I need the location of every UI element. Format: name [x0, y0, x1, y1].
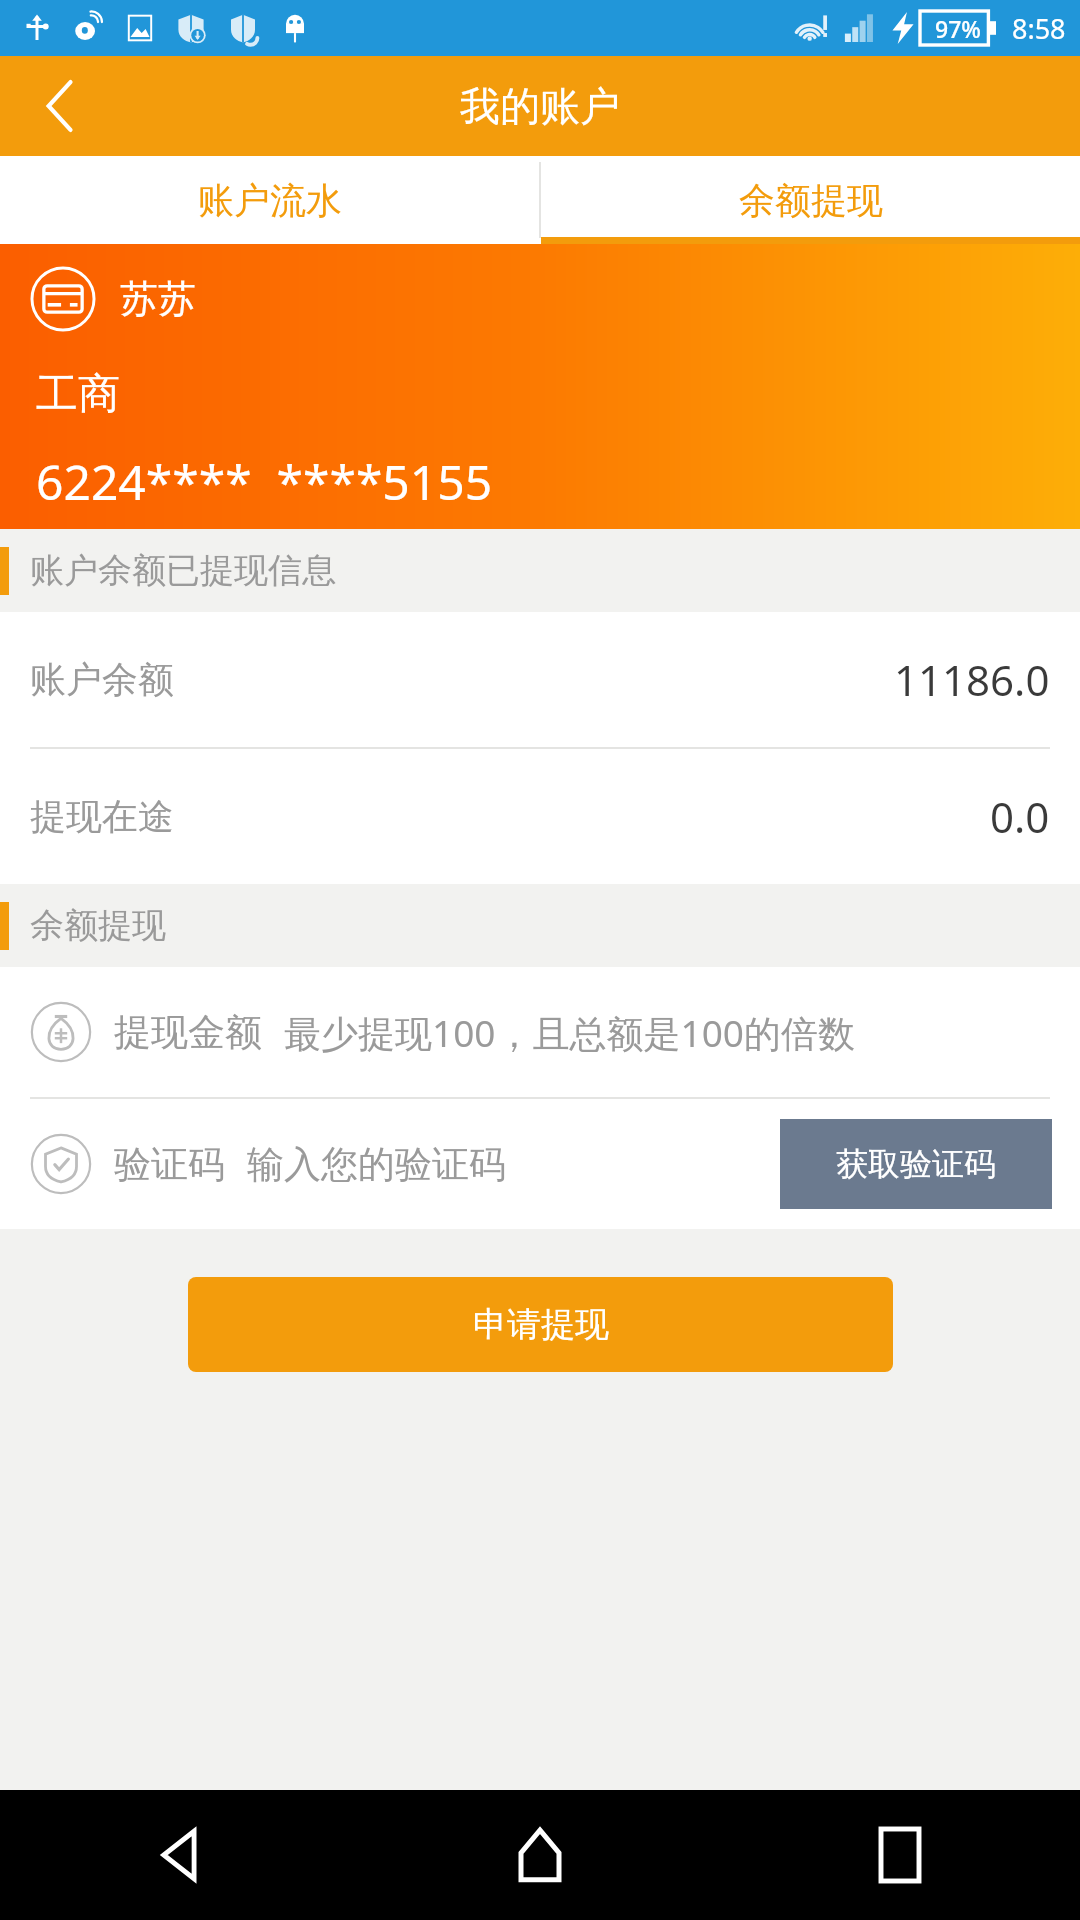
button[interactable]: 申请提现	[188, 1277, 893, 1372]
staticText: 97%	[935, 13, 981, 44]
staticText: 11186.0	[894, 651, 1050, 708]
button[interactable]: Back	[0, 56, 120, 156]
staticText: 最少提现100，且总额是100的倍数	[284, 1007, 855, 1058]
staticText: 0.0	[990, 788, 1050, 845]
button[interactable]: Home	[360, 1790, 720, 1920]
button[interactable]: 获取验证码	[780, 1119, 1052, 1209]
button[interactable]: 提现金额	[0, 967, 1080, 1097]
staticText: 余额提现	[30, 904, 166, 947]
button[interactable]: 提现在途	[0, 749, 1080, 884]
staticText: 账户余额	[30, 657, 174, 702]
staticText: 验证码	[114, 1141, 225, 1188]
staticText: 提现金额	[114, 1009, 262, 1056]
staticText: 6224**** ****5155	[36, 449, 493, 514]
button[interactable]: Recents	[720, 1790, 1080, 1920]
staticText: 提现在途	[30, 794, 174, 839]
button[interactable]: 账户余额	[0, 612, 1080, 747]
staticText: 账户余额已提现信息	[30, 549, 336, 592]
staticText: 工商	[36, 368, 120, 421]
button[interactable]: Back	[0, 1790, 360, 1920]
staticText: 8:58	[1012, 10, 1066, 47]
staticText: 获取验证码	[836, 1144, 996, 1184]
staticText: 输入您的验证码	[247, 1141, 506, 1188]
staticText: 账户流水	[198, 178, 342, 223]
staticText: 苏苏	[120, 275, 196, 323]
button[interactable]: 余额提现	[541, 156, 1080, 244]
button[interactable]: 账户流水	[0, 156, 539, 244]
staticText: 申请提现	[473, 1303, 609, 1346]
staticText: 我的账户	[460, 81, 620, 131]
staticText: 余额提现	[739, 178, 883, 223]
